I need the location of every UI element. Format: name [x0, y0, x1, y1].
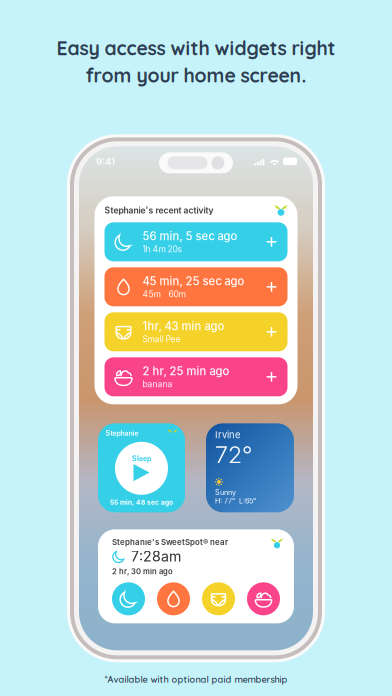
staticText: 2 hr, 30 min ago	[112, 567, 173, 576]
button[interactable]: Log feeding	[157, 582, 190, 615]
button[interactable]: Log diaper	[202, 582, 235, 615]
button[interactable]: 2 hr, 25 min ago	[104, 357, 287, 396]
button[interactable]: 45 min, 25 sec ago	[104, 267, 287, 306]
staticText: Small Pee	[142, 334, 180, 344]
staticText: 1h 4m 20s	[142, 244, 182, 254]
staticText: 45 min, 25 sec ago	[142, 274, 244, 288]
staticText: Sunny	[215, 488, 236, 497]
staticText: 55 min, 48 sec ago	[110, 498, 173, 506]
button[interactable]: Irvine	[206, 423, 294, 512]
button[interactable]: Log solids	[247, 582, 280, 615]
staticText: 7:28am	[131, 548, 181, 565]
staticText: 72°	[215, 441, 252, 469]
staticText: from your home screen.	[85, 63, 306, 87]
staticText: Stephanie's recent activity	[104, 205, 213, 215]
staticText: 1hr, 43 min ago	[142, 319, 224, 333]
staticText: 56 min, 5 sec ago	[142, 229, 237, 243]
button[interactable]: Stephanie	[98, 423, 185, 512]
staticText: banana	[142, 379, 172, 389]
button[interactable]: 56 min, 5 sec ago	[104, 222, 287, 261]
button[interactable]: 1hr, 43 min ago	[104, 312, 287, 351]
staticText: 2 hr, 25 min ago	[142, 364, 229, 378]
staticText: 45m 60m	[142, 289, 185, 299]
staticText: Easy access with widgets right	[56, 36, 335, 60]
staticText: Stephanie	[105, 429, 138, 437]
staticText: Irvine	[215, 429, 240, 441]
button[interactable]: Log sleep	[112, 582, 145, 615]
staticText: Sleep	[132, 454, 151, 463]
staticText: H: 77° L:65°	[215, 497, 256, 505]
staticText: *Available with optional paid membership	[104, 673, 287, 685]
staticText: 9:41	[96, 156, 115, 167]
staticText: Stephanie's SweetSpot® near	[112, 537, 228, 547]
